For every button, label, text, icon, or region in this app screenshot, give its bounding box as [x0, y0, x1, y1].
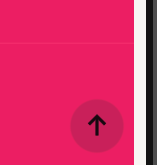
button[interactable]: Scroll to top — [71, 100, 123, 152]
